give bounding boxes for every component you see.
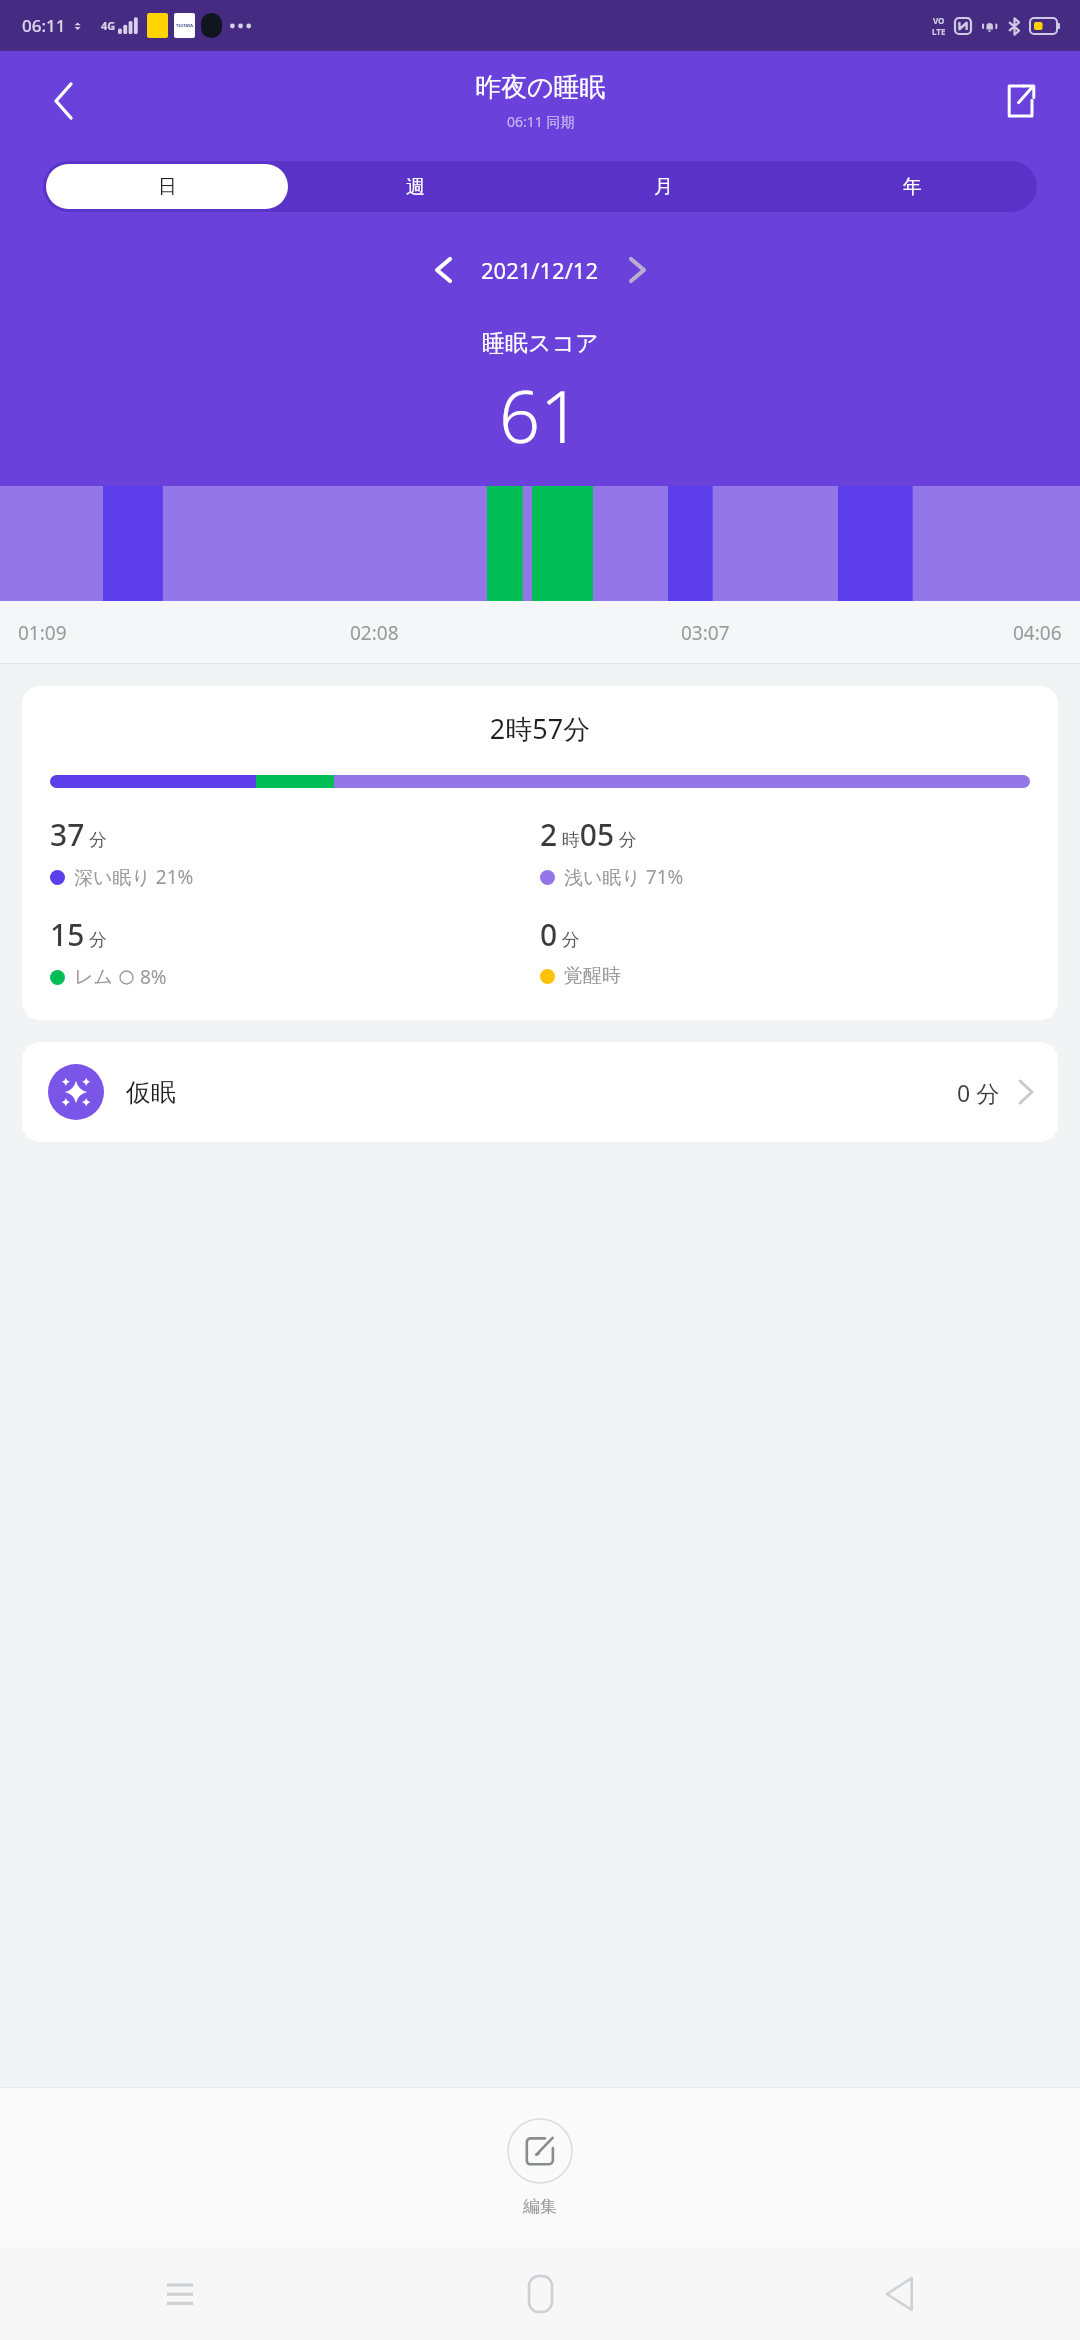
staticText: 日 (158, 175, 177, 199)
button[interactable]: 15 分 (50, 914, 540, 990)
button[interactable]: Back (36, 73, 92, 129)
staticText: 昨夜の睡眠 (475, 71, 606, 104)
staticText: 覚醒時 (564, 964, 621, 988)
staticText: 15 分 (50, 914, 107, 955)
staticText: 04:06 (1013, 620, 1062, 646)
button[interactable]: Next day (613, 246, 661, 294)
staticText: 37 分 (50, 814, 107, 855)
staticText: 01:09 (18, 620, 67, 646)
staticText: 2時57分 (50, 710, 1030, 747)
staticText: 0 分 (957, 1077, 1000, 1108)
button[interactable]: 年 (791, 164, 1034, 209)
staticText: レム (74, 965, 113, 989)
staticText: 4G (101, 18, 116, 33)
staticText: 03:07 (681, 620, 730, 646)
button[interactable]: 0 分 (540, 914, 1030, 988)
staticText: 06:11 (22, 14, 66, 37)
button[interactable]: 日 (46, 164, 288, 209)
button[interactable]: Share (992, 73, 1048, 129)
button[interactable]: 月 (542, 164, 785, 209)
button[interactable]: 編集 (507, 2118, 573, 2217)
button[interactable]: Previous day (419, 246, 467, 294)
staticText: 編集 (523, 2196, 557, 2217)
staticText: LTE (932, 26, 946, 37)
staticText: 浅い眠り 71% (564, 864, 684, 890)
staticText: VO (933, 15, 945, 26)
staticText: 61 (499, 366, 582, 464)
staticText: 月 (654, 175, 673, 199)
button[interactable]: Recents (0, 2247, 360, 2340)
button[interactable]: 仮眠 (22, 1042, 1058, 1142)
staticText: TSUTAYA (176, 23, 194, 28)
button[interactable]: 2 時05 分 (540, 814, 1030, 890)
staticText: 年 (903, 175, 922, 199)
button[interactable]: 37 分 (50, 814, 540, 890)
staticText: 0 分 (540, 914, 580, 955)
staticText: 週 (406, 175, 425, 199)
staticText: 2021/12/12 (481, 255, 599, 285)
staticText: 8% (140, 964, 167, 990)
staticText: 02:08 (350, 620, 399, 646)
staticText: 睡眠スコア (482, 329, 599, 358)
button[interactable]: 週 (294, 164, 536, 209)
staticText: 2 時05 分 (540, 814, 637, 855)
staticText: 06:11 同期 (507, 112, 575, 131)
staticText: 仮眠 (126, 1077, 176, 1108)
button[interactable]: Home (360, 2247, 720, 2340)
button[interactable]: Back (720, 2247, 1080, 2340)
staticText: 深い眠り 21% (74, 864, 194, 890)
